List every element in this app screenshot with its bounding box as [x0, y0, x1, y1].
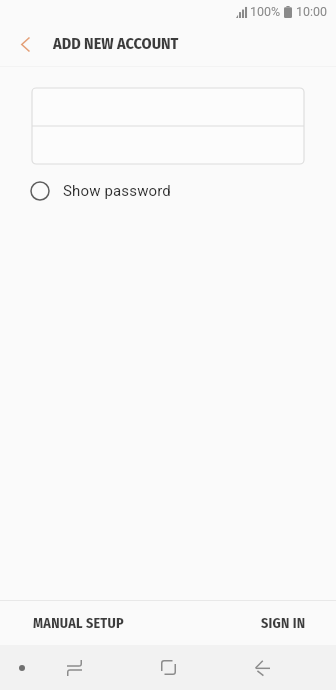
staticText: SIGN IN — [261, 615, 306, 632]
button[interactable]: Navigate up — [0, 22, 51, 66]
button[interactable]: Hide navigation bar — [1, 647, 42, 688]
button[interactable]: Recent apps — [27, 645, 121, 690]
staticText: 100% — [250, 4, 281, 19]
staticText: MANUAL SETUP — [33, 615, 124, 632]
button[interactable]: SIGN IN — [168, 601, 336, 645]
staticText: ADD NEW ACCOUNT — [53, 34, 179, 53]
staticText: Show password — [63, 182, 171, 200]
button[interactable] — [32, 126, 304, 164]
staticText: 10:00 — [296, 4, 328, 19]
button[interactable]: Back — [215, 645, 309, 690]
button[interactable]: Show password — [30, 181, 171, 201]
button[interactable] — [32, 88, 304, 126]
button[interactable]: MANUAL SETUP — [0, 601, 168, 645]
button[interactable]: Home — [121, 645, 215, 690]
